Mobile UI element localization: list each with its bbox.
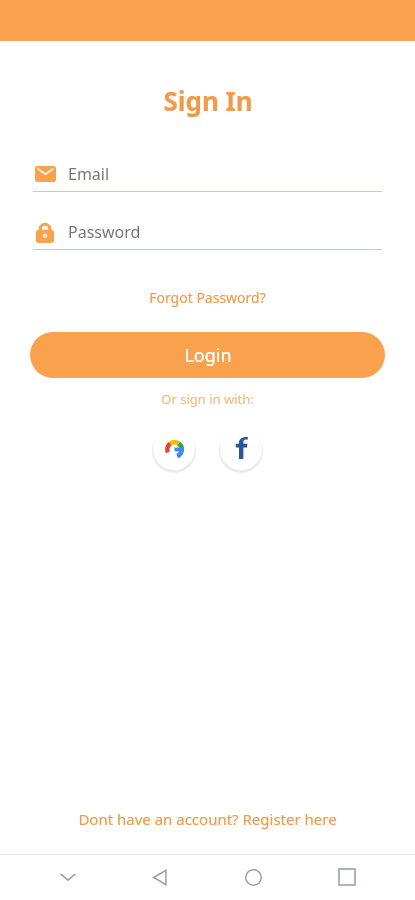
other: Password icon <box>33 220 57 244</box>
button[interactable]: Back <box>114 854 207 900</box>
button[interactable]: Forgot Password? <box>139 284 276 311</box>
staticText: Password <box>68 221 141 243</box>
button[interactable]: Login <box>30 332 385 378</box>
other: Email icon <box>33 162 57 186</box>
staticText: Dont have an account? Register here <box>78 809 337 829</box>
button[interactable]: Dont have an account? Register here <box>68 805 347 833</box>
button[interactable]: Email icon <box>33 162 382 192</box>
button[interactable]: Sign in with Facebook <box>220 428 262 470</box>
button[interactable]: Hide keyboard <box>22 854 114 900</box>
staticText: Forgot Password? <box>149 288 266 307</box>
staticText: Email <box>68 163 110 185</box>
button[interactable]: Sign in with Google <box>153 428 195 470</box>
staticText: Sign In <box>163 83 253 118</box>
button[interactable]: Recents <box>300 854 393 900</box>
staticText: Login <box>184 343 232 368</box>
button[interactable]: Home <box>207 854 300 900</box>
button[interactable]: Password icon <box>33 220 382 250</box>
staticText: Or sign in with: <box>161 390 254 408</box>
